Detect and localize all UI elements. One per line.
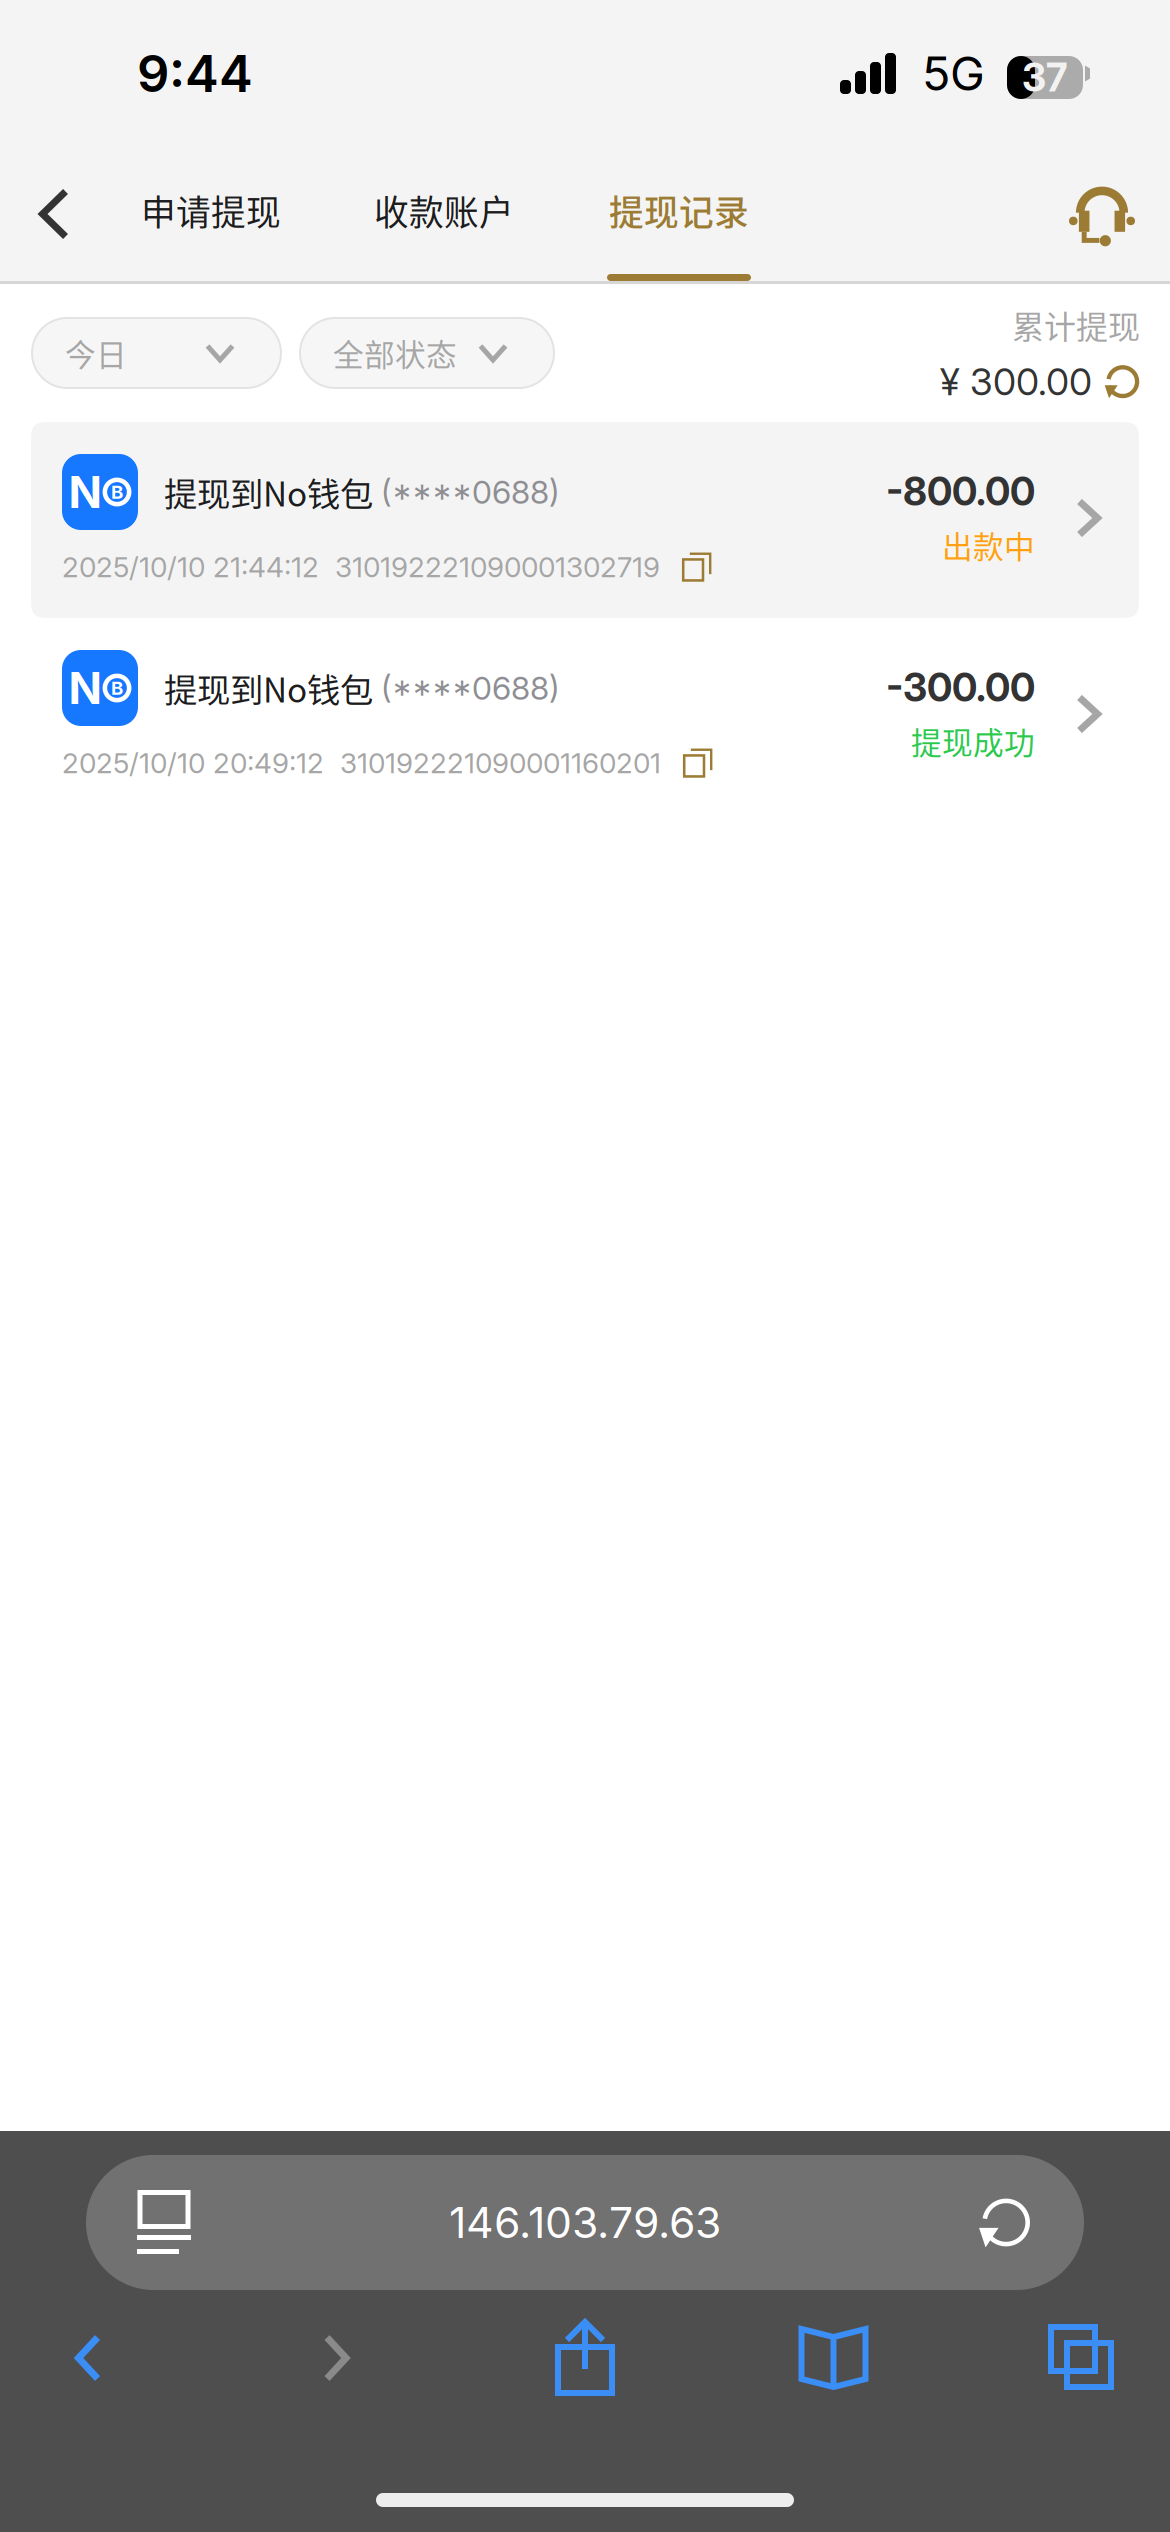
- staticText: 申请提现: [141, 185, 281, 236]
- button[interactable]: Forward: [276, 2312, 396, 2404]
- staticText: 2025/10/10 20:49:12: [62, 746, 324, 780]
- staticText: 5G: [922, 45, 985, 102]
- staticText: 出款中: [942, 523, 1035, 567]
- button[interactable]: Reload page: [940, 2172, 1070, 2272]
- staticText: B: [111, 481, 123, 503]
- staticText: B: [111, 677, 123, 699]
- staticText: 2025/10/10 21:44:12: [62, 550, 319, 584]
- staticText: (****0688): [373, 669, 560, 707]
- staticText: ¥ 300.00: [940, 359, 1092, 404]
- staticText: (****0688): [373, 473, 560, 511]
- staticText: 9:44: [137, 43, 253, 104]
- button[interactable]: N: [31, 618, 1139, 814]
- staticText: N: [69, 661, 103, 715]
- staticText: 提现到No钱包: [164, 664, 373, 712]
- button[interactable]: Back: [20, 147, 88, 281]
- button[interactable]: 申请提现: [142, 147, 280, 281]
- staticText: 310192221090001160201: [324, 746, 661, 780]
- staticText: 累计提现: [1012, 302, 1140, 348]
- staticText: 310192221090001302719: [319, 550, 660, 584]
- button[interactable]: 今日: [32, 318, 281, 388]
- button[interactable]: Back: [28, 2312, 148, 2404]
- button[interactable]: Page settings: [100, 2172, 230, 2272]
- button[interactable]: N: [31, 422, 1139, 618]
- button[interactable]: Copy order number: [661, 748, 713, 778]
- staticText: 提现到No钱包: [164, 468, 373, 516]
- button[interactable]: Refresh totals: [1104, 364, 1140, 400]
- button[interactable]: Customer service: [1067, 147, 1137, 281]
- staticText: 全部状态: [333, 331, 457, 375]
- staticText: 提现记录: [609, 185, 749, 236]
- button[interactable]: 收款账户: [375, 147, 513, 281]
- button[interactable]: Bookmarks: [773, 2312, 893, 2404]
- button[interactable]: 提现记录: [608, 147, 750, 281]
- staticText: 提现成功: [911, 719, 1035, 763]
- staticText: N: [69, 465, 103, 519]
- staticText: 今日: [65, 331, 127, 375]
- button[interactable]: 全部状态: [300, 318, 554, 388]
- staticText: -800.00: [886, 468, 1035, 515]
- staticText: 37: [1022, 54, 1067, 101]
- staticText: 收款账户: [374, 185, 514, 236]
- button[interactable]: Copy order number: [660, 552, 712, 582]
- button[interactable]: Share: [525, 2312, 645, 2404]
- staticText: 146.103.79.63: [449, 2197, 721, 2248]
- button[interactable]: Tabs: [1022, 2312, 1142, 2404]
- staticText: -300.00: [886, 664, 1035, 711]
